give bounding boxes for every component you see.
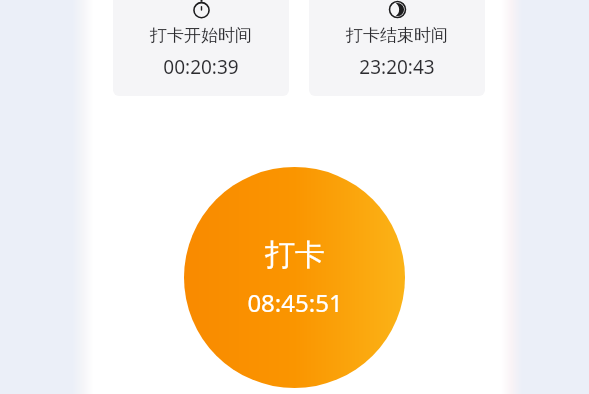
staticText: 08:45:51 [247,286,343,319]
staticText: 打卡 [265,236,325,274]
button[interactable]: 打卡 [184,167,405,388]
other: 结束时间 [387,0,408,19]
button[interactable]: 开始时间 [113,0,289,96]
staticText: 23:20:43 [359,54,435,80]
button[interactable]: 结束时间 [309,0,485,96]
staticText: 打卡结束时间 [346,25,448,46]
staticText: 00:20:39 [163,54,239,80]
staticText: 打卡开始时间 [150,25,252,46]
other: 开始时间 [191,0,212,19]
